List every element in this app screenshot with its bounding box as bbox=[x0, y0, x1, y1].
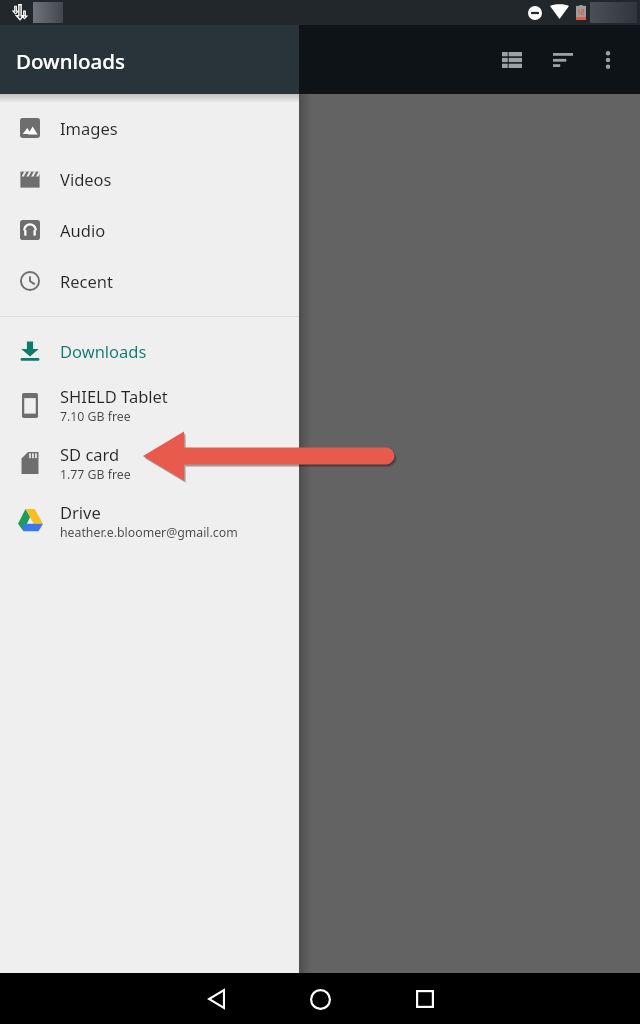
button[interactable]: Sort bbox=[539, 25, 587, 94]
staticText: heather.e.bloomer@gmail.com bbox=[60, 524, 238, 541]
button[interactable]: Images bbox=[0, 102, 299, 153]
staticText: SHIELD Tablet bbox=[60, 385, 168, 407]
button[interactable]: Drive bbox=[0, 492, 299, 550]
button[interactable]: Videos bbox=[0, 153, 299, 204]
button[interactable]: Grid view bbox=[488, 25, 536, 94]
staticText: Downloads bbox=[60, 340, 147, 362]
button[interactable]: More options bbox=[584, 25, 632, 94]
staticText: Downloads bbox=[16, 47, 125, 75]
button[interactable]: SHIELD Tablet bbox=[0, 376, 299, 434]
button[interactable]: Recent bbox=[0, 255, 299, 306]
staticText: 7.10 GB free bbox=[60, 408, 131, 425]
staticText: SD card bbox=[60, 443, 120, 465]
staticText: 1.77 GB free bbox=[60, 466, 131, 483]
staticText: Images bbox=[60, 117, 118, 139]
staticText: Audio bbox=[60, 219, 106, 241]
button[interactable]: Home bbox=[296, 975, 344, 1023]
staticText: Videos bbox=[60, 168, 112, 190]
button[interactable]: SD card bbox=[0, 434, 299, 492]
button[interactable]: Audio bbox=[0, 204, 299, 255]
button[interactable]: Back bbox=[192, 975, 240, 1023]
button[interactable]: Downloads bbox=[0, 325, 299, 376]
staticText: Drive bbox=[60, 501, 101, 523]
button[interactable]: Recent apps bbox=[401, 975, 449, 1023]
staticText: Recent bbox=[60, 270, 113, 292]
